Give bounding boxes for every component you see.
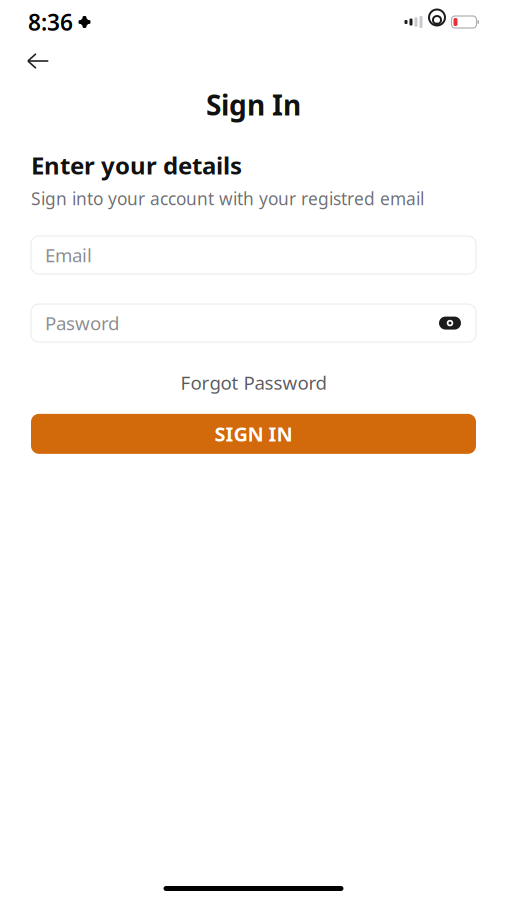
- button[interactable]: SIGN IN: [31, 414, 476, 454]
- staticText: Sign In: [206, 86, 301, 123]
- button[interactable]: Pasword: [31, 304, 476, 342]
- button[interactable]: Forgot Password: [170, 364, 336, 401]
- staticText: SIGN IN: [214, 421, 292, 447]
- staticText: 8:36: [28, 7, 73, 37]
- staticText: Sign into your account with your registr…: [31, 187, 424, 210]
- staticText: Email: [45, 243, 92, 267]
- staticText: Pasword: [45, 311, 119, 335]
- button[interactable]: Email: [31, 236, 476, 274]
- button[interactable]: Back: [16, 44, 60, 78]
- staticText: Forgot Password: [180, 370, 326, 395]
- staticText: Enter your details: [31, 149, 242, 181]
